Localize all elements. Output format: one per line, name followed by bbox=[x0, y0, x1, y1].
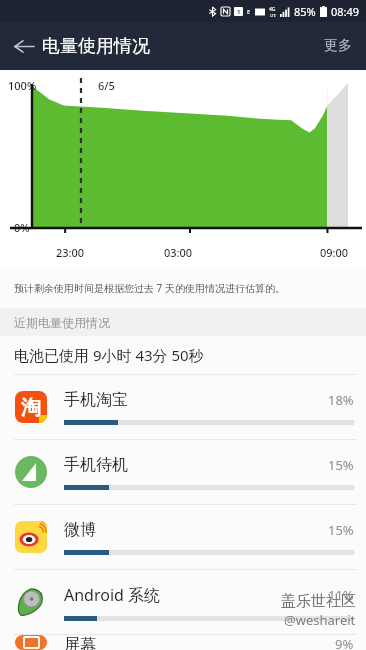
button[interactable]: 手机待机 bbox=[0, 440, 366, 504]
staticText: 08:49 bbox=[331, 4, 360, 19]
staticText: 9% bbox=[335, 635, 354, 650]
button[interactable]: 淘 bbox=[0, 375, 366, 439]
staticText: 预计剩余使用时间是根据您过去 7 天的使用情况进行估算的。 bbox=[14, 281, 285, 295]
button[interactable]: 更多 bbox=[318, 31, 358, 61]
staticText: 电池已使用 9小时 43分 50秒 bbox=[14, 345, 204, 365]
staticText: 100% bbox=[8, 78, 37, 93]
staticText: 4G bbox=[269, 6, 276, 13]
staticText: 微博 bbox=[64, 520, 328, 540]
staticText: E bbox=[247, 8, 251, 16]
staticText: 手机淘宝 bbox=[64, 390, 328, 410]
staticText: 18% bbox=[328, 391, 354, 409]
staticText: 更多 bbox=[324, 37, 352, 55]
staticText: 盖乐世社区 bbox=[281, 592, 356, 611]
staticText: Android 系统 bbox=[64, 584, 328, 606]
staticText: 23:00 bbox=[56, 245, 85, 260]
staticText: LTE bbox=[270, 13, 276, 18]
staticText: 近期电量使用情况 bbox=[14, 315, 110, 330]
staticText: 85% bbox=[294, 4, 316, 19]
staticText: 屏幕 bbox=[64, 635, 335, 650]
staticText: 电量使用情况 bbox=[42, 35, 150, 58]
staticText: 11% bbox=[328, 586, 354, 604]
button[interactable]: 电池已使用 9小时 43分 50秒 bbox=[0, 336, 366, 374]
staticText: 淘 bbox=[21, 395, 41, 420]
staticText: 0% bbox=[14, 220, 30, 235]
staticText: 15% bbox=[328, 456, 354, 474]
staticText: @weshareit bbox=[284, 611, 356, 629]
staticText: 1 bbox=[237, 8, 241, 16]
button[interactable]: Android 系统 bbox=[0, 570, 366, 634]
button[interactable]: 屏幕 bbox=[0, 635, 366, 650]
staticText: 15% bbox=[328, 521, 354, 539]
button[interactable]: 微博 bbox=[0, 505, 366, 569]
staticText: 03:00 bbox=[164, 245, 193, 260]
button[interactable]: 返回 bbox=[6, 28, 42, 64]
staticText: 手机待机 bbox=[64, 455, 328, 475]
staticText: 6/5 bbox=[98, 78, 115, 93]
staticText: 09:00 bbox=[320, 245, 349, 260]
